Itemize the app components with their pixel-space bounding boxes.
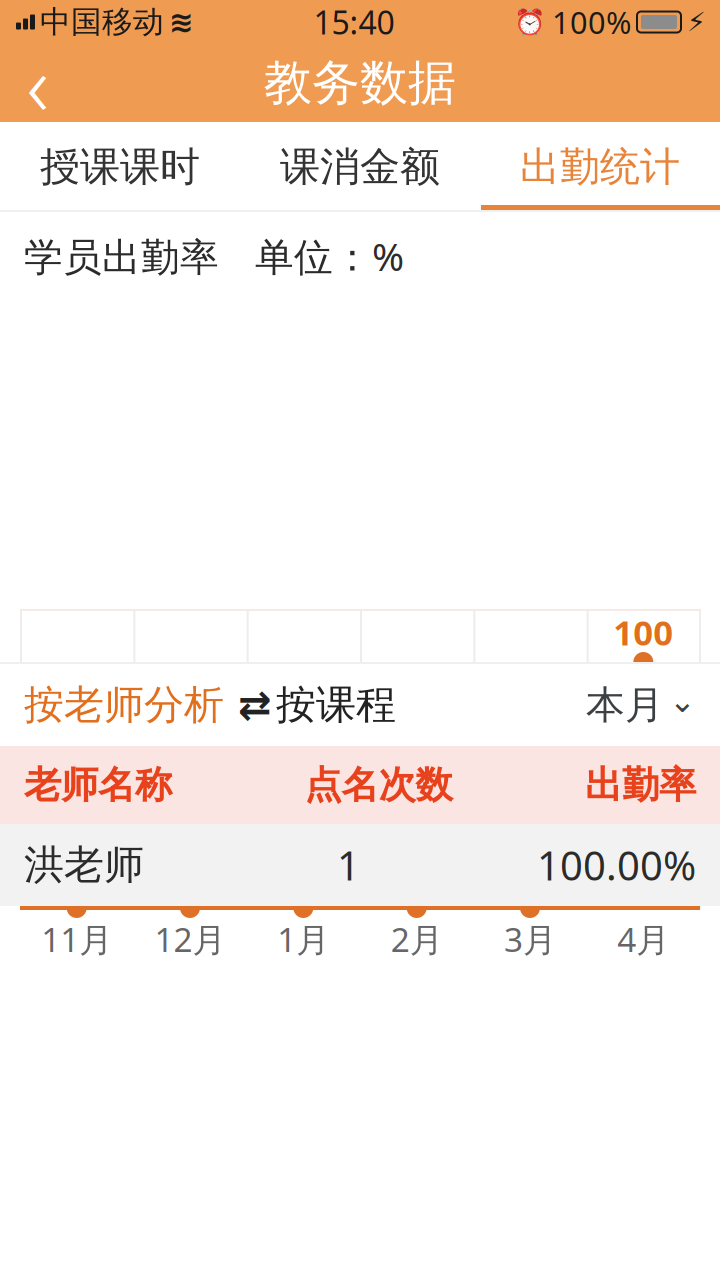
staticText: 老师名称 — [24, 762, 172, 808]
staticText: 本月 — [586, 681, 664, 729]
button[interactable]: 本月 — [586, 681, 696, 729]
staticText: 授课课时 — [40, 142, 200, 191]
staticText: 按老师分析 — [24, 680, 224, 729]
staticText: 2月 — [391, 917, 443, 961]
staticText: 教务数据 — [264, 53, 456, 112]
button[interactable]: Back — [0, 45, 76, 121]
staticText: 3月 — [504, 917, 556, 961]
staticText: 12月 — [154, 917, 225, 961]
staticText: ⏰ — [514, 7, 546, 36]
staticText: 100.00% — [537, 838, 696, 891]
button[interactable]: 按老师分析 — [24, 680, 224, 729]
staticText: ⇄ — [238, 682, 272, 728]
staticText: 洪老师 — [24, 840, 144, 889]
staticText: ≋ — [169, 5, 194, 39]
button[interactable]: 出勤统计 — [480, 124, 720, 210]
staticText: 出勤率 — [585, 762, 696, 808]
staticText: 1 — [337, 838, 360, 891]
staticText: ‹ — [26, 26, 49, 140]
staticText: 出勤统计 — [520, 142, 680, 191]
staticText: ⌄ — [669, 683, 696, 719]
staticText: 100% — [552, 2, 631, 42]
staticText: 11月 — [41, 917, 112, 961]
staticText: 4月 — [617, 917, 669, 961]
staticText: ⚡︎ — [687, 7, 706, 37]
staticText: 1月 — [277, 917, 329, 961]
staticText: 课消金额 — [280, 142, 440, 191]
button[interactable]: 授课课时 — [0, 124, 240, 210]
button[interactable]: ⇄ — [238, 680, 396, 729]
staticText: 0 — [67, 855, 87, 901]
staticText: 15:40 — [313, 1, 394, 43]
staticText: 学员出勤率 单位：% — [24, 230, 404, 282]
button[interactable]: 课消金额 — [240, 124, 480, 210]
staticText: 100 — [613, 609, 673, 655]
staticText: 按课程 — [276, 680, 396, 729]
staticText: 点名次数 — [304, 762, 452, 808]
staticText: 中国移动 — [40, 3, 164, 41]
